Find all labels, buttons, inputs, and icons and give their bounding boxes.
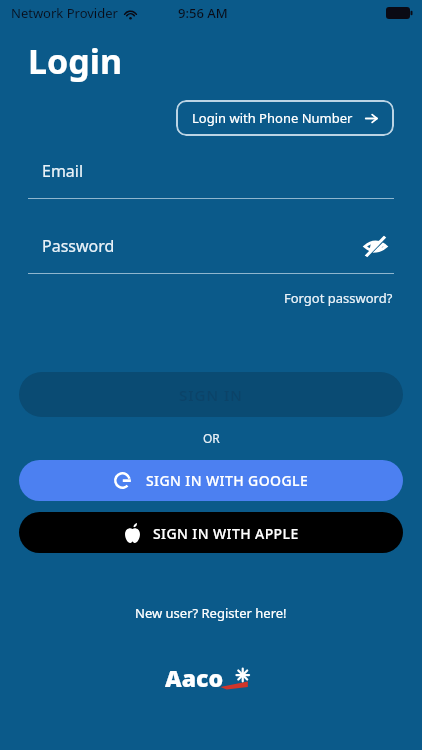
staticText: SIGN IN (179, 385, 243, 405)
button[interactable]: SIGN IN (19, 372, 403, 417)
other: Aaco (165, 663, 257, 693)
button[interactable]: Apple (19, 512, 403, 553)
button[interactable]: Show password (361, 234, 390, 259)
button[interactable]: Forgot password? (281, 287, 396, 309)
staticText: 9:56 AM (178, 4, 228, 22)
other: Apple (124, 523, 141, 543)
staticText: New user? Register here! (135, 604, 287, 622)
staticText: SIGN IN WITH APPLE (153, 524, 299, 543)
staticText: Login (28, 38, 123, 84)
staticText: Forgot password? (284, 289, 393, 307)
staticText: Login with Phone Number (192, 109, 353, 127)
staticText: SIGN IN WITH GOOGLE (146, 471, 309, 490)
other: Go (365, 112, 378, 125)
button[interactable]: Login with Phone Number (176, 100, 394, 136)
staticText: Aaco (165, 662, 224, 692)
button[interactable]: New user? Register here! (129, 601, 293, 625)
other: Google (113, 471, 132, 490)
staticText: Network Provider (11, 4, 118, 22)
staticText: Email (42, 160, 84, 182)
staticText: Password (42, 235, 115, 257)
button[interactable]: Google (19, 460, 403, 501)
staticText: OR (203, 430, 220, 446)
